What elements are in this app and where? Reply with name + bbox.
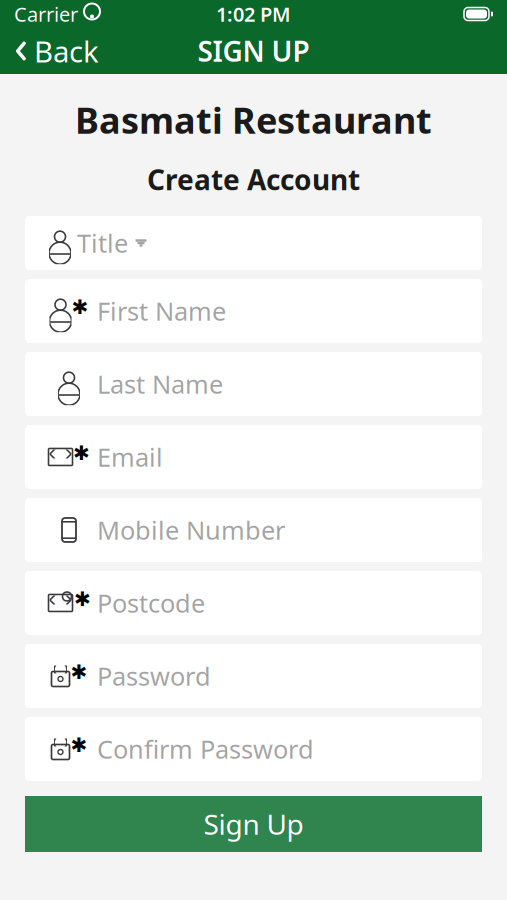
button[interactable]: ✱ <box>25 571 482 635</box>
staticText: ✱ <box>70 661 87 683</box>
staticText: Password <box>97 659 211 693</box>
button[interactable]: Back <box>0 29 113 73</box>
button[interactable]: ✱ <box>25 717 482 781</box>
staticText: 1:02 PM <box>216 1 291 27</box>
staticText: ✱ <box>73 442 90 464</box>
staticText: ✱ <box>70 734 87 756</box>
staticText: Sign Up <box>203 805 303 843</box>
staticText: SIGN UP <box>197 32 309 70</box>
staticText: First Name <box>97 294 226 328</box>
staticText: Postcode <box>97 586 205 620</box>
button[interactable]: Title <box>25 216 482 270</box>
staticText: Create Account <box>147 161 360 198</box>
staticText: Confirm Password <box>97 732 314 766</box>
staticText: ✱ <box>74 588 91 610</box>
button[interactable]: ✱ <box>25 425 482 489</box>
staticText: Email <box>97 440 163 474</box>
staticText: Back <box>34 31 99 70</box>
button[interactable]: ✱ <box>25 644 482 708</box>
staticText: Carrier <box>14 1 78 27</box>
button[interactable]: Sign Up <box>25 796 482 852</box>
staticText: ✱ <box>71 296 88 318</box>
button[interactable]: ✱ <box>25 279 482 343</box>
button[interactable]: Last Name <box>25 352 482 416</box>
staticText: Last Name <box>97 367 223 401</box>
staticText: Mobile Number <box>97 513 285 547</box>
staticText: Title <box>77 226 128 260</box>
button[interactable]: Mobile Number <box>25 498 482 562</box>
staticText: Basmati Restaurant <box>75 96 432 144</box>
